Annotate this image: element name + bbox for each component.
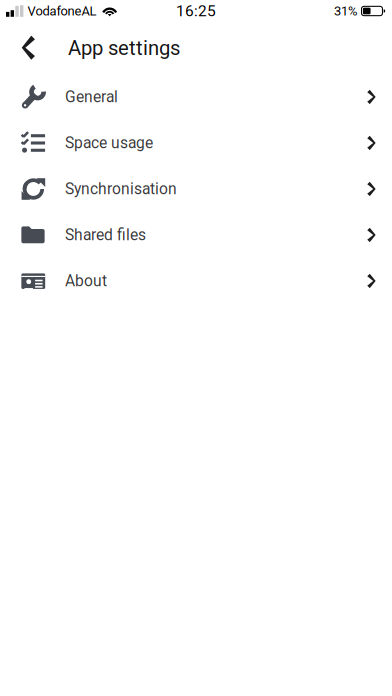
- button[interactable]: Shared files: [0, 212, 392, 258]
- staticText: 16:25: [176, 2, 216, 20]
- button[interactable]: Back: [8, 26, 48, 70]
- button[interactable]: General: [0, 74, 392, 120]
- staticText: Space usage: [65, 134, 153, 152]
- button[interactable]: Space usage: [0, 120, 392, 166]
- staticText: General: [65, 88, 118, 106]
- button[interactable]: About: [0, 258, 392, 304]
- button[interactable]: Synchronisation: [0, 166, 392, 212]
- staticText: About: [65, 272, 107, 290]
- staticText: VodafoneAL: [27, 3, 96, 19]
- staticText: App settings: [68, 36, 180, 60]
- staticText: Synchronisation: [65, 180, 177, 198]
- staticText: 31%: [334, 3, 357, 19]
- staticText: Shared files: [65, 226, 146, 244]
